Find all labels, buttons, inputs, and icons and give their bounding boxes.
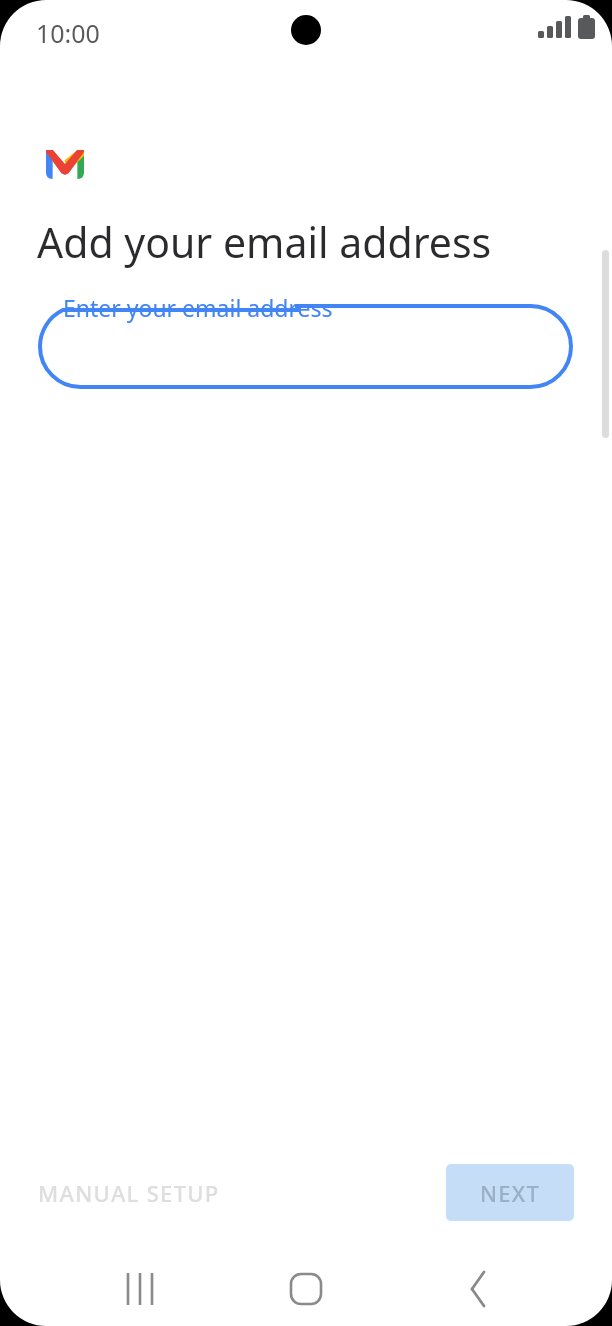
button[interactable]: Home bbox=[276, 1258, 336, 1320]
staticText: Enter your email address bbox=[63, 292, 333, 323]
staticText: NEXT bbox=[480, 1178, 540, 1208]
staticText: 10:00 bbox=[36, 16, 100, 50]
button[interactable]: Back bbox=[448, 1258, 508, 1320]
other: Gmail bbox=[46, 150, 84, 179]
button[interactable] bbox=[38, 304, 573, 389]
button[interactable]: MANUAL SETUP bbox=[30, 1168, 212, 1218]
button[interactable]: NEXT bbox=[446, 1164, 574, 1221]
staticText: MANUAL SETUP bbox=[38, 1178, 220, 1208]
staticText: Add your email address bbox=[37, 214, 492, 270]
button[interactable]: Recent apps bbox=[100, 1258, 180, 1320]
